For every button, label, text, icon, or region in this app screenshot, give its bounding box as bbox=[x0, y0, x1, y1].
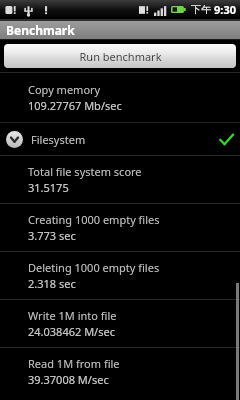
staticText: Creating 1000 empty files bbox=[28, 212, 160, 227]
button[interactable]: Total file system score bbox=[0, 155, 240, 203]
staticText: 31.5175 bbox=[28, 180, 69, 195]
button[interactable]: Copy memory bbox=[0, 72, 240, 122]
staticText: 24.038462 M/sec bbox=[28, 324, 115, 339]
button[interactable]: Collapse Filesystem bbox=[0, 122, 240, 155]
staticText: 下午 bbox=[191, 3, 211, 16]
staticText: 2.318 sec bbox=[28, 276, 76, 291]
staticText: 109.27767 Mb/sec bbox=[28, 98, 122, 113]
button[interactable]: Read 1M from file bbox=[0, 347, 240, 395]
staticText: Run benchmark bbox=[79, 49, 162, 64]
staticText: 9:30 bbox=[214, 2, 236, 17]
other: Collapse Filesystem bbox=[6, 131, 23, 148]
staticText: Write 1M into file bbox=[28, 308, 117, 323]
staticText: 39.37008 M/sec bbox=[28, 372, 109, 387]
staticText: Benchmark bbox=[6, 22, 75, 38]
staticText: Total file system score bbox=[28, 164, 142, 179]
staticText: 3.773 sec bbox=[28, 228, 76, 243]
staticText: Copy memory bbox=[28, 82, 101, 97]
button[interactable]: Run benchmark bbox=[4, 44, 236, 68]
staticText: Deleting 1000 empty files bbox=[28, 260, 160, 275]
button[interactable]: Creating 1000 empty files bbox=[0, 203, 240, 251]
button[interactable]: Write 1M into file bbox=[0, 299, 240, 347]
staticText: Filesystem bbox=[31, 132, 219, 147]
button[interactable]: Deleting 1000 empty files bbox=[0, 251, 240, 299]
staticText: Read 1M from file bbox=[28, 356, 120, 371]
